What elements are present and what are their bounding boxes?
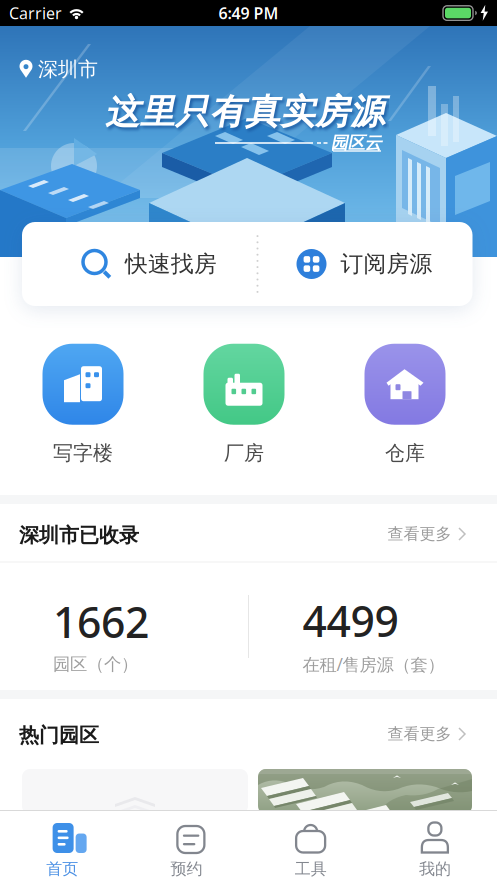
staticText: 厂房	[224, 441, 264, 465]
staticText: 这里只有真实房源	[105, 91, 385, 133]
button[interactable]: 首页	[0, 822, 124, 879]
button[interactable]: 我的	[373, 822, 497, 879]
staticText: 工具	[295, 859, 327, 879]
staticText: 4499	[302, 592, 398, 649]
staticText: 1662	[53, 593, 149, 650]
staticText: 深圳市已收录	[19, 523, 139, 548]
staticText: Carrier	[9, 2, 62, 24]
staticText: 查看更多	[387, 724, 451, 744]
staticText: 仓库	[385, 441, 425, 465]
staticText: 订阅房源	[340, 250, 432, 278]
button[interactable]: 写字楼	[42, 344, 123, 465]
staticText: 深圳市	[38, 57, 98, 82]
staticText: 我的	[419, 859, 451, 879]
button[interactable]: 订阅房源	[264, 222, 464, 306]
staticText: 园区云	[330, 132, 381, 154]
staticText: 热门园区	[19, 723, 99, 748]
button[interactable]: 查看更多	[387, 524, 466, 544]
staticText: 6:49 PM	[218, 2, 278, 24]
button[interactable]: 热门园区	[258, 769, 472, 814]
button[interactable]: 预约	[124, 822, 248, 879]
button[interactable]: 深圳市	[19, 57, 98, 82]
staticText: 在租/售房源（套）	[302, 653, 444, 676]
staticText: 预约	[170, 859, 202, 879]
staticText: 快速找房	[125, 250, 217, 278]
staticText: 园区（个）	[53, 654, 138, 675]
button[interactable]: 热门园区	[22, 769, 248, 814]
staticText: 写字楼	[53, 441, 113, 465]
button[interactable]: 工具	[248, 822, 373, 879]
button[interactable]: 快速找房	[49, 222, 249, 306]
button[interactable]: 查看更多	[387, 724, 466, 744]
button[interactable]: 仓库	[364, 344, 445, 465]
button[interactable]: 厂房	[203, 344, 284, 465]
staticText: 查看更多	[387, 524, 451, 544]
staticText: 首页	[46, 859, 78, 879]
